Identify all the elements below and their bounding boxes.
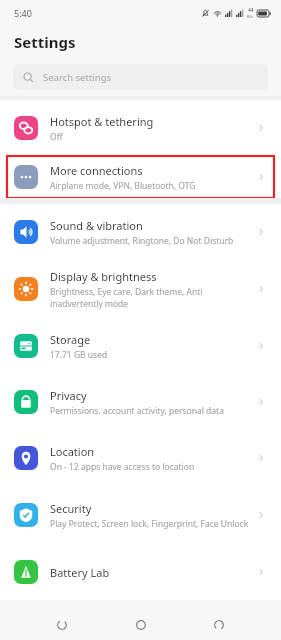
staticText: Display & brightness	[50, 269, 157, 284]
staticText: Volume adjustment, Ringtone, Do Not Dist…	[50, 235, 234, 247]
staticText: 44	[248, 7, 254, 14]
staticText: Sound & vibration	[50, 218, 143, 233]
button[interactable]: Display & brightness	[0, 260, 281, 318]
button[interactable]: Location	[0, 430, 281, 486]
staticText: Search settings	[43, 71, 112, 84]
button[interactable]: Home	[124, 610, 158, 640]
staticText: Battery Lab	[50, 565, 110, 580]
button[interactable]: Privacy	[0, 374, 281, 430]
button[interactable]: Sound & vibration	[0, 204, 281, 260]
button[interactable]: Recents	[202, 610, 236, 640]
button[interactable]: Hotspot & tethering	[0, 100, 281, 156]
button[interactable]: Security	[0, 486, 281, 544]
staticText: Settings	[14, 32, 76, 52]
button[interactable]: Battery Lab	[0, 544, 281, 600]
staticText: Hotspot & tethering	[50, 114, 154, 129]
staticText: Play Protect, Screen lock, Fingerprint, …	[50, 518, 249, 530]
staticText: Privacy	[50, 388, 87, 403]
staticText: Security	[50, 501, 92, 516]
staticText: Brightness, Eye care, Dark theme, Anti i…	[50, 286, 249, 310]
staticText: B/s	[247, 14, 254, 19]
staticText: Off	[50, 131, 63, 143]
staticText: On - 12 apps have access to location	[50, 461, 195, 473]
staticText: 5:40	[14, 7, 32, 19]
button[interactable]: More connections	[7, 156, 274, 198]
button[interactable]: Storage	[0, 318, 281, 374]
staticText: 17.71 GB used	[50, 349, 108, 361]
staticText: More connections	[50, 163, 143, 178]
staticText: Storage	[50, 332, 91, 347]
button[interactable]: Back	[45, 610, 79, 640]
staticText: Location	[50, 444, 95, 459]
staticText: Airplane mode, VPN, Bluetooth, OTG	[50, 180, 196, 192]
staticText: Permissions, account activity, personal …	[50, 405, 224, 417]
button[interactable]: Search settings	[13, 64, 268, 90]
